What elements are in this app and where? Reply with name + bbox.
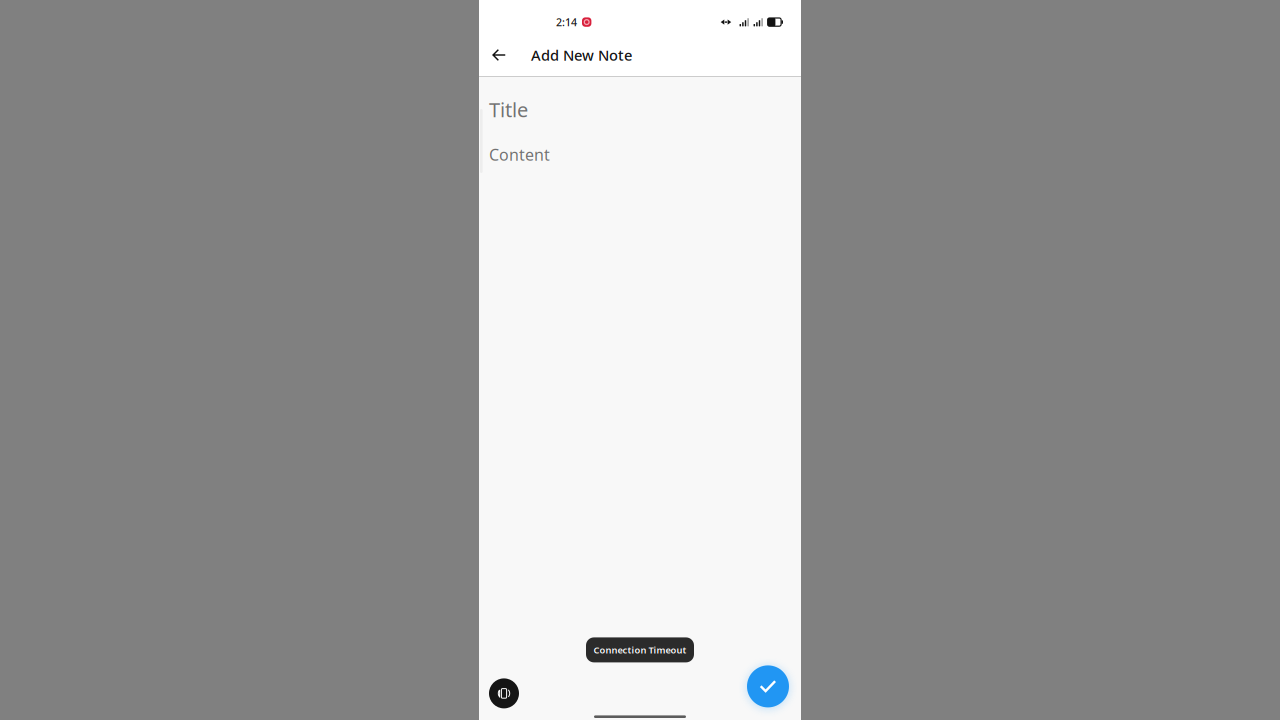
button[interactable]: Back — [482, 37, 516, 73]
button[interactable]: Content — [489, 121, 791, 164]
staticText: Connection Timeout — [593, 644, 686, 656]
button[interactable]: Vibrate — [489, 678, 519, 708]
staticText: Title — [489, 96, 528, 123]
button[interactable]: Save note — [747, 665, 789, 707]
staticText: Add New Note — [531, 45, 632, 65]
staticText: 2:14 — [556, 15, 577, 29]
staticText: Content — [489, 144, 550, 165]
button[interactable]: Title — [489, 77, 791, 121]
